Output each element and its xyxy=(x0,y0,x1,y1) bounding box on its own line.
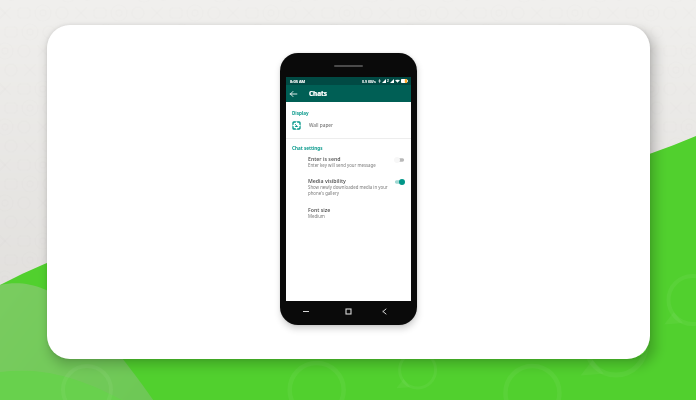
staticText: Wall paper xyxy=(309,122,334,129)
staticText: Chats xyxy=(309,89,328,98)
button[interactable]: Wall paper xyxy=(286,119,411,132)
button[interactable]: Recent apps xyxy=(298,303,314,319)
button[interactable]: Media visibility xyxy=(286,177,411,196)
staticText: 8:05 AM xyxy=(290,79,306,84)
staticText: Enter key will send your message xyxy=(308,162,376,168)
button[interactable]: Home xyxy=(340,303,356,319)
staticText: Show newly downloaded media in your xyxy=(308,184,388,190)
staticText: Enter is send xyxy=(308,155,341,162)
staticText: phone's gallery xyxy=(308,190,339,196)
button[interactable]: Back xyxy=(376,303,392,319)
staticText: Media visibility xyxy=(308,177,346,184)
staticText: Chat settings xyxy=(292,145,323,151)
button[interactable]: Back xyxy=(287,88,299,100)
staticText: Display xyxy=(292,110,309,116)
staticText: 0.9 KB/s xyxy=(362,79,376,84)
staticText: Medium xyxy=(308,213,325,219)
staticText: Font size xyxy=(308,206,331,213)
staticText: 2 xyxy=(387,79,389,83)
button[interactable]: Font size xyxy=(308,206,398,219)
button[interactable]: Enter is send xyxy=(286,155,411,168)
